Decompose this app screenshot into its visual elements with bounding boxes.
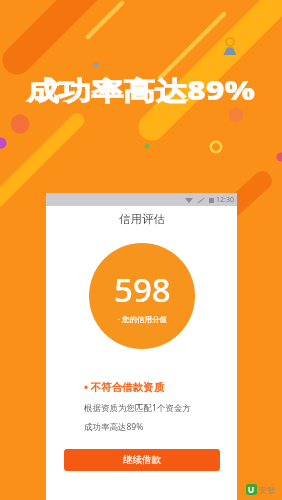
button[interactable]: 继续借款 <box>64 449 220 471</box>
staticText: · 您的信用分值 <box>118 314 167 324</box>
staticText: 根据资质为您匹配1个资金方 <box>84 402 191 414</box>
staticText: 成功率高达89% <box>84 421 144 433</box>
staticText: • 不符合借款资质 <box>84 380 165 394</box>
staticText: 信用评估 <box>119 212 165 226</box>
staticText: 继续借款 <box>123 454 161 466</box>
staticText: 598 <box>114 267 171 312</box>
staticText: 成功率高达89% <box>27 72 255 108</box>
staticText: U <box>248 484 255 495</box>
staticText: 安智 <box>259 485 275 495</box>
staticText: 12:30 <box>216 195 234 205</box>
